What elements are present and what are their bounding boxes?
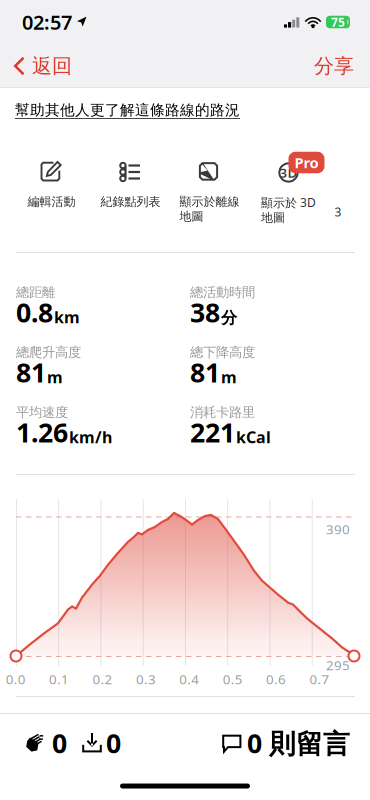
staticText: 消耗卡路里: [190, 404, 255, 420]
staticText: 顯示於離線地圖: [179, 194, 239, 224]
staticText: 0: [106, 725, 121, 761]
staticText: 總活動時間: [190, 284, 255, 300]
staticText: 1.26: [16, 414, 68, 450]
staticText: 02:57: [22, 9, 72, 35]
staticText: 38: [190, 294, 220, 330]
staticText: kCal: [236, 426, 271, 448]
button[interactable]: 紀錄點列表: [91, 157, 170, 235]
staticText: 總距離: [16, 284, 55, 300]
staticText: 0: [52, 725, 67, 761]
staticText: 0.5: [223, 670, 243, 688]
staticText: km/h: [69, 426, 112, 448]
staticText: 295: [326, 656, 350, 674]
staticText: 分享: [314, 54, 354, 78]
staticText: 0.7: [309, 670, 329, 688]
staticText: km: [54, 306, 80, 328]
button[interactable]: 分享: [298, 44, 370, 88]
staticText: 0.3: [136, 670, 156, 688]
staticText: 總爬升高度: [16, 344, 81, 360]
staticText: 顯示於 3D 地圖: [261, 194, 316, 225]
staticText: 81: [190, 354, 220, 390]
staticText: 0.6: [266, 670, 286, 688]
staticText: 平均速度: [16, 404, 68, 420]
staticText: 0.8: [16, 294, 53, 330]
staticText: Pro: [294, 153, 318, 172]
button[interactable]: 0: [16, 720, 75, 766]
button[interactable]: 幫助其他人更了解這條路線的路況: [0, 88, 370, 119]
staticText: 390: [326, 520, 350, 538]
staticText: 編輯活動: [27, 194, 75, 209]
staticText: 75: [331, 14, 345, 30]
button[interactable]: 返回: [0, 44, 84, 88]
staticText: 221: [190, 414, 235, 450]
staticText: 紀錄點列表: [100, 194, 160, 209]
staticText: 0.0: [6, 670, 26, 688]
staticText: 總下降高度: [190, 344, 255, 360]
staticText: 81: [16, 354, 46, 390]
staticText: 0 則留言: [247, 725, 350, 761]
staticText: 0.4: [179, 670, 199, 688]
staticText: m: [47, 366, 63, 388]
button[interactable]: 編輯活動: [12, 157, 91, 235]
button[interactable]: 0 則留言: [214, 720, 358, 766]
staticText: m: [221, 366, 237, 388]
staticText: 0.2: [92, 670, 112, 688]
button[interactable]: 0: [75, 720, 127, 766]
staticText: 0.1: [49, 670, 69, 688]
staticText: 3D: [279, 164, 297, 181]
button[interactable]: 3D: [249, 157, 328, 235]
staticText: 3: [334, 204, 341, 220]
staticText: 返回: [32, 54, 72, 78]
button[interactable]: 顯示於離線地圖: [170, 157, 249, 235]
staticText: 幫助其他人更了解這條路線的路況: [15, 101, 240, 119]
staticText: 分: [221, 308, 237, 328]
